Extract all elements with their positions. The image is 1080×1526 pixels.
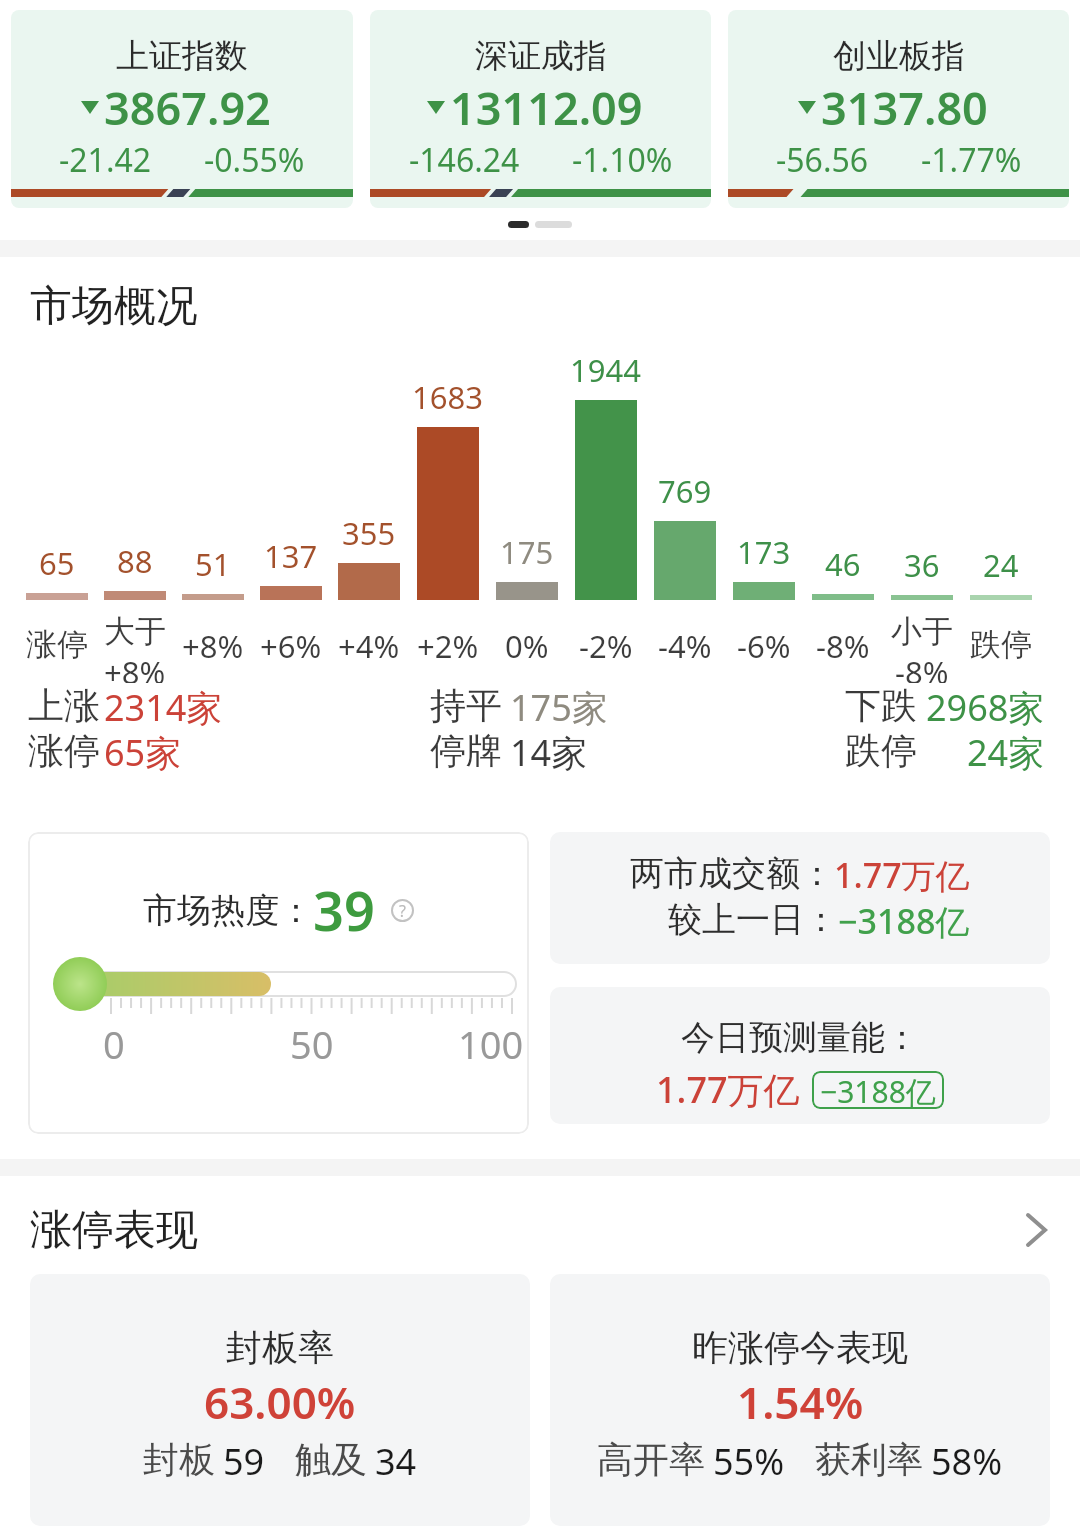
staticText: 50 [290,1018,334,1070]
button[interactable]: 上证指数 [11,10,353,208]
staticText: 175 [500,531,554,573]
staticText: −3188亿 [838,898,970,944]
staticText: 3137.80 [821,77,988,138]
staticText: 市场热度： [143,889,313,932]
staticText: 1.77万亿 [834,852,970,898]
staticText: 39 [313,873,375,947]
staticText: -0.55% [204,138,305,182]
staticText: 65家 [104,728,182,773]
staticText: -21.42 [59,138,152,182]
staticText: 小于 [891,612,953,651]
staticText: 深证成指 [475,35,607,77]
staticText: -146.24 [409,138,520,182]
staticText: 14家 [510,728,588,773]
staticText: 涨停 [28,728,100,773]
staticText: 769 [658,470,712,512]
staticText: 36 [904,544,940,586]
staticText: 两市成交额： [630,852,834,895]
staticText: 1.54% [737,1372,864,1432]
staticText: 24 [983,544,1019,586]
staticText: 46 [825,543,861,585]
staticText: 51 [195,543,231,585]
staticText: 持平 [430,683,502,728]
staticText: 创业板指 [833,35,965,77]
staticText: 2968家 [926,683,1045,728]
staticText: -8% [816,625,870,667]
staticText: 大于 [104,612,166,651]
staticText: 63.00% [204,1372,356,1432]
staticText: 3867.92 [104,77,271,138]
staticText: -1.10% [572,138,673,182]
staticText: 今日预测量能： [681,1016,919,1059]
staticText: -1.77% [921,138,1022,182]
staticText: 175家 [510,683,608,728]
staticText: 高开率 [597,1437,705,1482]
staticText: 涨停表现 [30,1204,198,1257]
staticText: 市场概况 [30,280,198,333]
staticText: +4% [338,625,400,667]
button[interactable]: 深证成指 [370,10,711,208]
button[interactable]: 创业板指 [728,10,1069,208]
button[interactable]: 市场热度： [28,832,529,1134]
staticText: -2% [579,625,633,667]
staticText: 0 [103,1018,125,1070]
staticText: −3188亿 [820,1071,936,1109]
staticText: 88 [117,540,153,582]
staticText: 24家 [967,728,1045,773]
button[interactable]: 昨涨停今表现 [550,1274,1050,1526]
staticText: 0% [505,625,549,667]
staticText: -4% [658,625,712,667]
staticText: -8% [895,651,949,683]
staticText: +6% [260,625,322,667]
staticText: 55% [713,1437,785,1486]
staticText: 173 [737,531,791,573]
staticText: 昨涨停今表现 [692,1325,908,1370]
button[interactable]: 两市成交额： [550,832,1050,964]
staticText: 137 [264,535,318,577]
staticText: +2% [417,625,479,667]
staticText: 触及 [295,1437,367,1482]
button[interactable]: 涨停表现 [0,1203,1080,1257]
staticText: 跌停 [845,728,917,773]
staticText: 2314家 [104,683,223,728]
staticText: 355 [342,512,396,554]
staticText: 1.77万亿 [656,1065,800,1114]
staticText: 13112.09 [450,77,643,138]
staticText: 100 [458,1018,524,1070]
staticText: 较上一日： [668,898,838,941]
staticText: -56.56 [776,138,869,182]
staticText: 上涨 [28,683,100,728]
staticText: 65 [39,542,75,584]
staticText: 34 [375,1437,417,1486]
staticText: ? [399,900,406,922]
staticText: 58% [931,1437,1003,1486]
staticText: -6% [737,625,791,667]
button[interactable]: 封板率 [30,1274,530,1526]
staticText: 59 [223,1437,265,1486]
staticText: 停牌 [430,728,502,773]
staticText: +8% [182,625,244,667]
staticText: 1683 [412,376,483,418]
staticText: 1944 [570,349,641,391]
staticText: +8% [104,651,166,683]
staticText: 封板率 [226,1325,334,1370]
staticText: 获利率 [815,1437,923,1482]
staticText: 下跌 [845,683,917,728]
staticText: 封板 [143,1437,215,1482]
staticText: 上证指数 [116,35,248,77]
staticText: 跌停 [970,625,1032,664]
staticText: 涨停 [26,625,88,664]
button[interactable]: 今日预测量能： [550,987,1050,1124]
